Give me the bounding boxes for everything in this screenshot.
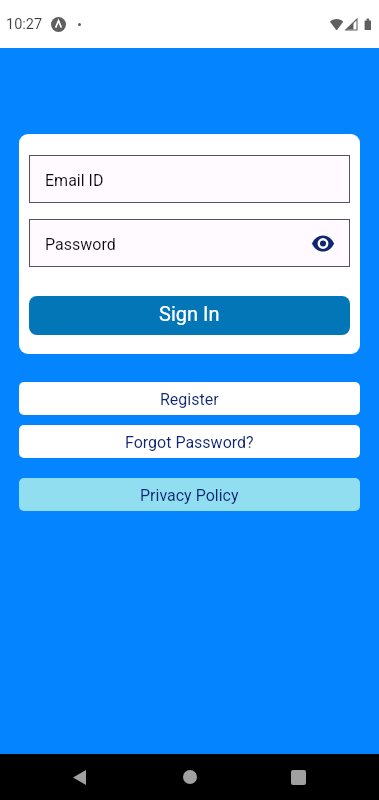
button[interactable]: Back (55, 754, 103, 800)
staticText: Sign In (159, 302, 220, 325)
staticText: Forgot Password? (125, 433, 254, 452)
staticText: Privacy Policy (140, 486, 239, 505)
button[interactable]: Register (19, 382, 360, 415)
button[interactable]: Toggle password visibility (305, 225, 341, 261)
staticText: Password (45, 235, 116, 254)
button[interactable]: Home (165, 754, 213, 800)
staticText: 10:27 (6, 16, 43, 33)
staticText: Email ID (45, 171, 104, 190)
button[interactable]: Email ID (29, 155, 350, 203)
button[interactable]: Privacy Policy (19, 478, 360, 511)
staticText: Register (160, 390, 219, 409)
button[interactable]: Password (29, 219, 350, 267)
button[interactable]: Forgot Password? (19, 425, 360, 458)
button[interactable]: Sign In (29, 296, 350, 335)
button[interactable]: Recent apps (274, 754, 322, 800)
